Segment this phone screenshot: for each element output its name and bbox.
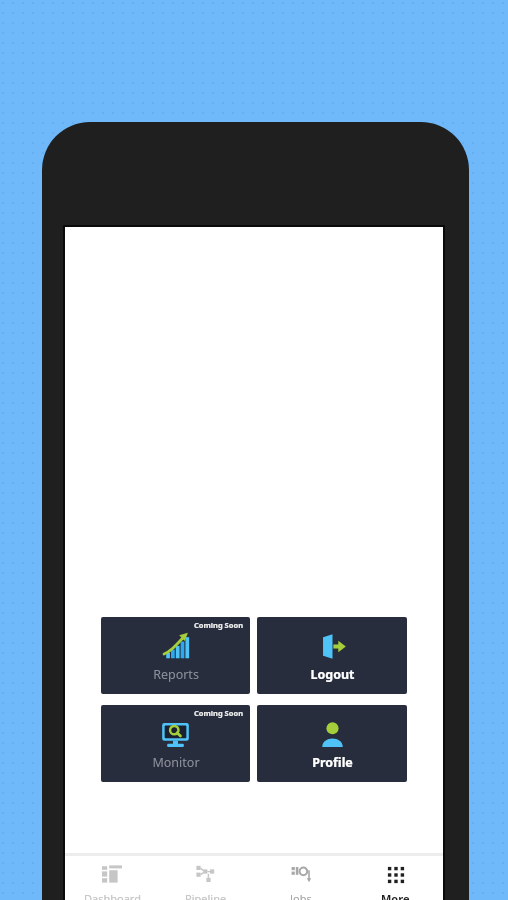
- button[interactable]: More: [348, 856, 443, 900]
- button[interactable]: Coming Soon: [101, 705, 250, 782]
- other: Pipeline: [196, 865, 216, 885]
- button[interactable]: Coming Soon: [101, 617, 250, 694]
- button[interactable]: Logout: [257, 617, 407, 694]
- button[interactable]: Pipeline: [159, 856, 253, 900]
- staticText: Monitor: [152, 754, 200, 771]
- staticText: Jobs: [290, 891, 312, 900]
- other: Jobs: [291, 865, 311, 885]
- staticText: Profile: [312, 754, 353, 771]
- staticText: More: [381, 891, 410, 900]
- other: More: [386, 865, 406, 885]
- staticText: Pipeline: [185, 891, 227, 900]
- staticText: Coming Soon: [194, 708, 244, 718]
- staticText: Coming Soon: [194, 620, 244, 630]
- staticText: Logout: [310, 666, 355, 683]
- button[interactable]: Jobs: [253, 856, 348, 900]
- button[interactable]: Profile: [257, 705, 407, 782]
- button[interactable]: Dashboard: [65, 856, 159, 900]
- staticText: Reports: [153, 666, 199, 683]
- staticText: Dashboard: [84, 891, 141, 900]
- other: Dashboard: [102, 865, 122, 885]
